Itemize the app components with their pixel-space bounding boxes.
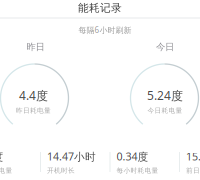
staticText: 能耗记录 [78, 1, 122, 14]
staticText: 前日耗电量 [186, 166, 200, 175]
staticText: 开机时长 [47, 166, 75, 175]
staticText: 0.34度 [116, 149, 148, 163]
button[interactable]: 能耗记录 [0, 0, 200, 17]
staticText: 5.24度 [147, 87, 183, 103]
button[interactable]: 14.47小时 [40, 148, 109, 176]
staticText: 今日耗电量 [147, 106, 182, 115]
button[interactable]: 0.34度 [109, 148, 179, 176]
button[interactable]: 15.4度 [179, 148, 200, 176]
staticText: 昨日 [26, 41, 44, 53]
staticText: 14.47小时 [47, 149, 96, 163]
staticText: 每小时耗电量 [116, 166, 158, 175]
button[interactable]: 4.4度 [0, 148, 40, 176]
staticText: 4.4度 [19, 87, 48, 103]
staticText: 昨日耗电量 [16, 106, 51, 115]
staticText: 今日 [156, 41, 174, 53]
staticText: 昨日耗电量 [0, 166, 12, 175]
staticText: 4.4度 [0, 149, 3, 163]
staticText: 15.4度 [186, 149, 200, 163]
staticText: 每隔6小时刷新 [78, 25, 131, 35]
